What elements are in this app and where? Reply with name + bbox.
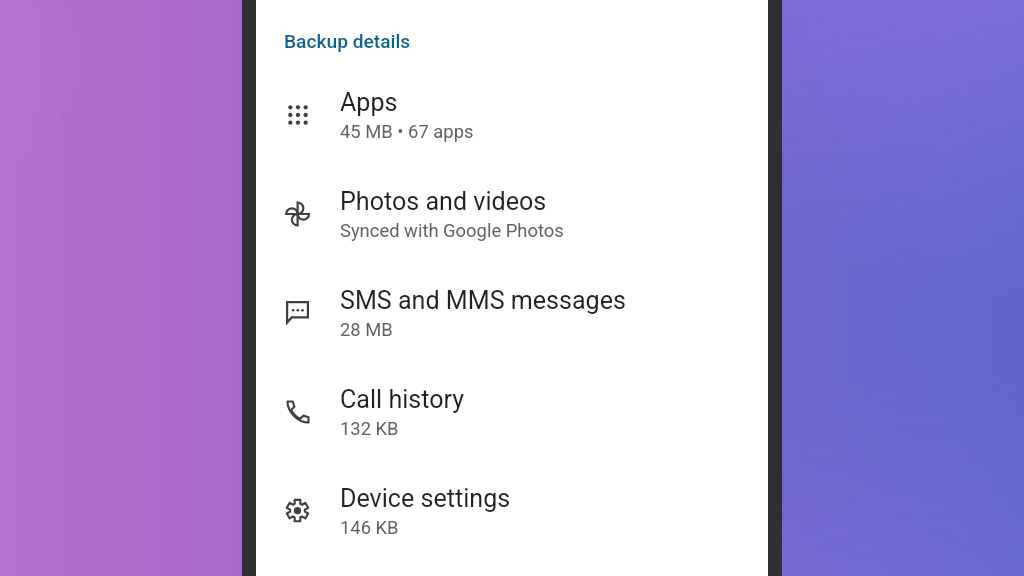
button[interactable]: SMS and MMS messages, 28 MB (256, 264, 768, 363)
staticText: Synced with Google Photos (340, 220, 564, 242)
button[interactable]: Device settings, 146 KB (256, 462, 768, 561)
staticText: Photos and videos (340, 187, 547, 216)
button[interactable]: Call history, 132 KB (256, 363, 768, 462)
button[interactable]: Backup details (284, 30, 411, 53)
staticText: Backup details (284, 30, 411, 53)
staticText: Call history (340, 385, 465, 414)
staticText: SMS and MMS messages (340, 286, 626, 315)
staticText: Apps (340, 88, 398, 117)
staticText: Device settings (340, 484, 511, 513)
staticText: 146 KB (340, 517, 399, 539)
staticText: 45 MB • 67 apps (340, 121, 474, 143)
button[interactable]: Photos and videos, Synced with Google Ph… (256, 165, 768, 264)
staticText: 132 KB (340, 418, 399, 440)
button[interactable]: Apps, 45 MB • 67 apps (256, 66, 768, 165)
staticText: 28 MB (340, 319, 393, 341)
